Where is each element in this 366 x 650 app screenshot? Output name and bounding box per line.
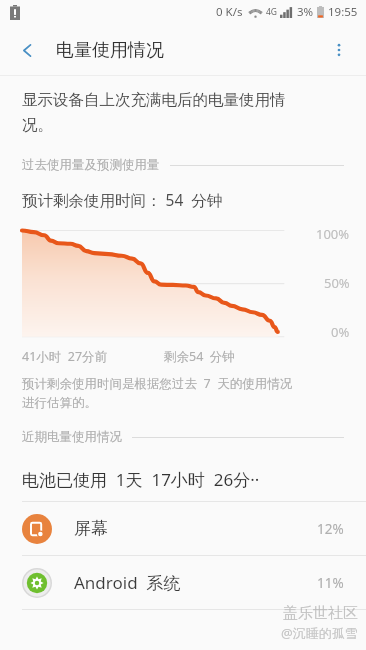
staticText: 近期电量使用情况 <box>22 429 122 445</box>
button[interactable]: Android 系统 <box>0 556 366 609</box>
staticText: 预计剩余使用时间： 54 分钟 <box>22 189 223 210</box>
staticText: 41小时 27分前 <box>22 348 108 365</box>
staticText: Android 系统 <box>74 571 181 594</box>
staticText: 50% <box>324 274 350 292</box>
button[interactable]: 屏幕 <box>0 502 366 555</box>
staticText: 况。 <box>22 115 53 135</box>
staticText: @沉睡的孤雪 <box>281 624 358 642</box>
staticText: 100% <box>316 225 350 243</box>
staticText: 电量使用情况 <box>56 39 164 62</box>
staticText: 19:55 <box>328 4 358 20</box>
staticText: 屏幕 <box>74 518 108 539</box>
button[interactable]: Back <box>6 29 48 71</box>
staticText: 剩余54 分钟 <box>164 348 235 365</box>
staticText: 预计剩余使用时间是根据您过去 7 天的使用情况 <box>22 375 293 392</box>
staticText: 显示设备自上次充满电后的电量使用情 <box>22 90 286 110</box>
staticText: 0 K/s <box>216 4 243 20</box>
staticText: 11% <box>317 574 344 592</box>
button[interactable]: 电池已使用 1天 17小时 26分·· <box>0 457 366 501</box>
staticText: 0% <box>331 323 350 341</box>
staticText: 3% <box>297 4 314 20</box>
staticText: 过去使用量及预测使用量 <box>22 157 160 173</box>
staticText: 12% <box>317 520 344 538</box>
staticText: 4G <box>266 6 278 18</box>
staticText: 电池已使用 1天 17小时 26分·· <box>22 468 260 491</box>
staticText: 进行估算的。 <box>22 395 97 411</box>
button[interactable]: More options <box>318 29 360 71</box>
staticText: 盖乐世社区 <box>283 604 358 623</box>
